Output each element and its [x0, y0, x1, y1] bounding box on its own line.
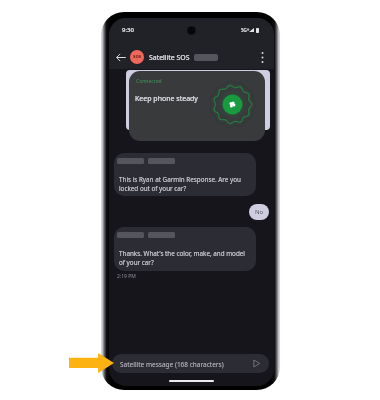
button[interactable]: This is Ryan at Garmin Response. Are you	[114, 153, 256, 196]
staticText: Keep phone steady	[135, 94, 198, 104]
staticText: locked out of your car?	[119, 184, 187, 193]
staticText: This is Ryan at Garmin Response. Are you	[119, 175, 241, 184]
staticText: No	[255, 208, 264, 216]
button[interactable]: Thanks. What's the color, make, and mode…	[114, 227, 256, 271]
button[interactable]: Back	[111, 46, 130, 69]
staticText: SOS	[133, 54, 142, 60]
button[interactable]: Connected	[129, 71, 265, 141]
staticText: Satellite message (168 characters)	[120, 360, 224, 369]
staticText: 2:19 PM	[117, 273, 136, 280]
button[interactable]: Satellite message (168 characters)	[112, 354, 269, 373]
staticText: 5G+	[241, 27, 250, 33]
staticText: Thanks. What's the color, make, and mode…	[119, 249, 245, 258]
staticText: Satellite SOS	[149, 53, 190, 62]
staticText: of your car?	[119, 258, 154, 267]
staticText: 9:30	[122, 26, 134, 34]
button[interactable]: No	[249, 204, 269, 220]
button[interactable]: Send	[249, 356, 263, 370]
button[interactable]: More options	[253, 46, 271, 69]
staticText: Connected	[136, 78, 162, 85]
